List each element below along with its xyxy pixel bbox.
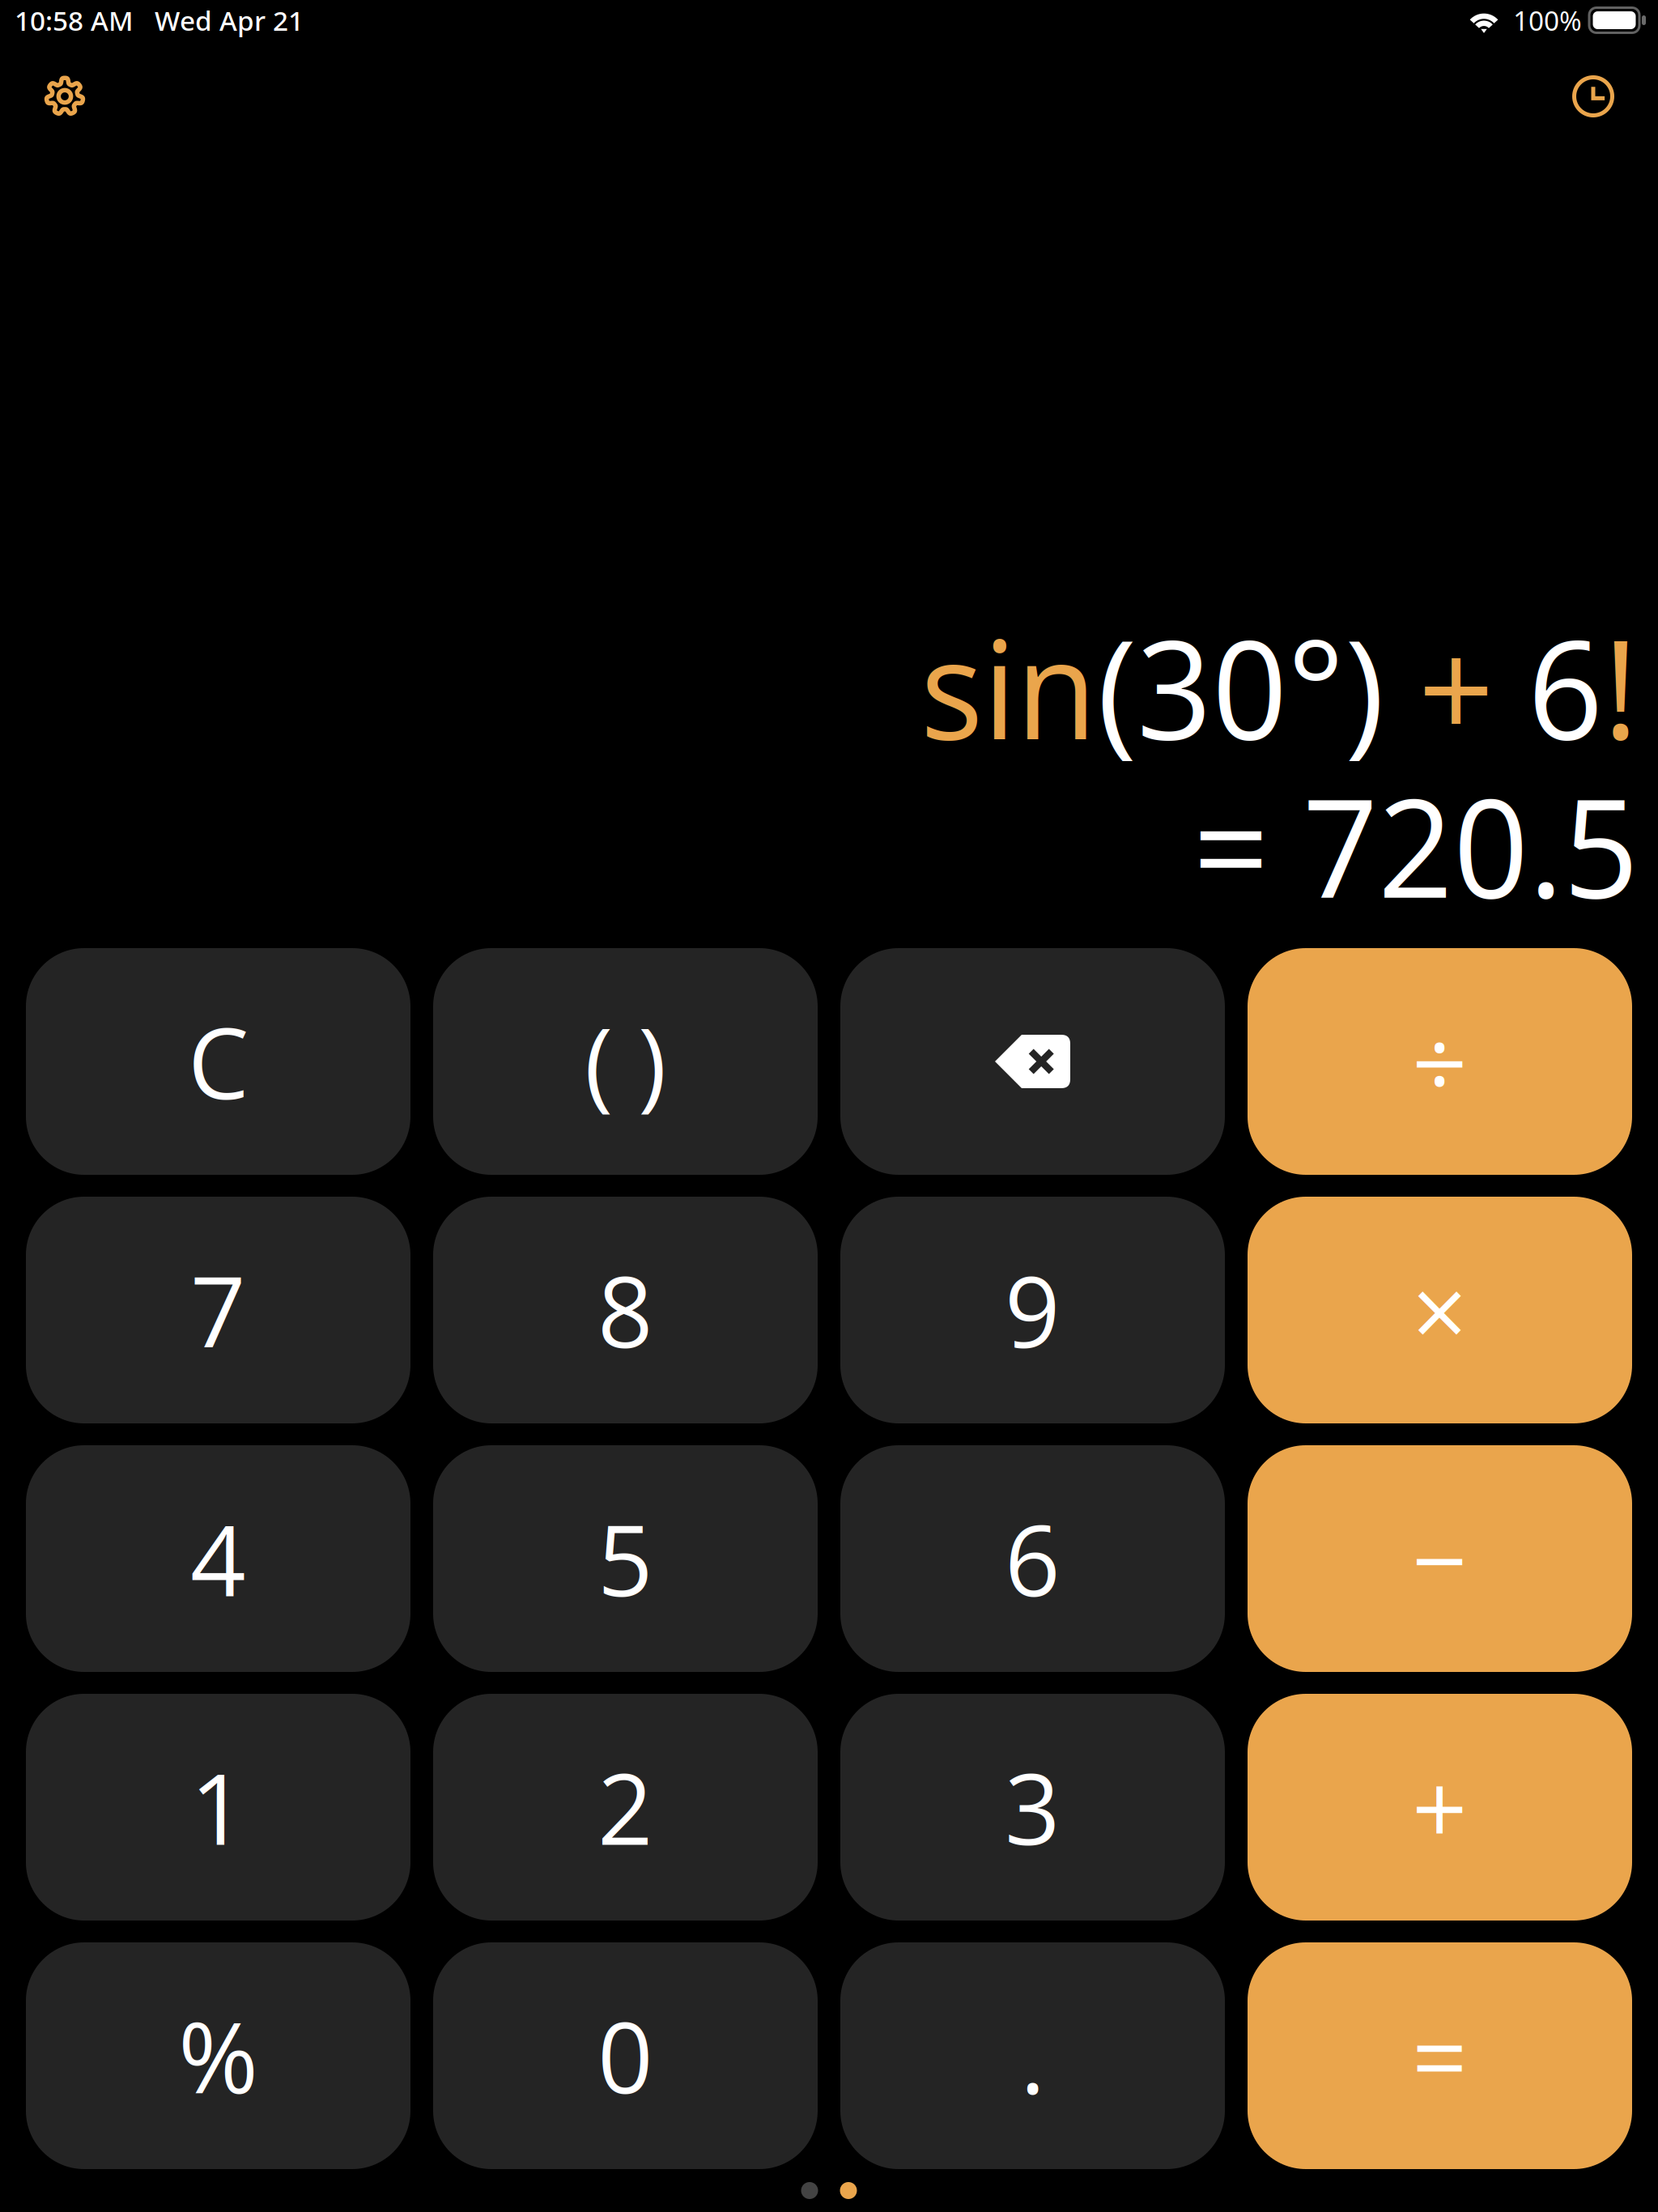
staticText: 8	[597, 1244, 653, 1376]
button[interactable]: =	[1248, 1942, 1632, 2169]
staticText: ( )	[585, 995, 666, 1128]
button[interactable]: History	[1553, 56, 1634, 137]
staticText: +	[1412, 1741, 1468, 1873]
staticText: +	[1384, 594, 1528, 779]
staticText: 9	[1005, 1244, 1061, 1376]
button[interactable]: 2	[433, 1694, 818, 1921]
staticText: −	[1412, 1492, 1468, 1625]
staticText: Wed Apr 21	[155, 2, 304, 38]
button[interactable]: .	[840, 1942, 1225, 2169]
button[interactable]: 9	[840, 1197, 1225, 1423]
button[interactable]: C	[26, 948, 410, 1175]
button[interactable]: 0	[433, 1942, 818, 2169]
button[interactable]: Page 2	[840, 2182, 857, 2199]
button[interactable]: 1	[26, 1694, 410, 1921]
button[interactable]: 7	[26, 1197, 410, 1423]
button[interactable]: Settings	[24, 56, 105, 137]
staticText: sin	[920, 594, 1097, 779]
staticText: 10:58 AM	[15, 2, 134, 38]
staticText: 7	[190, 1244, 246, 1376]
staticText: 5	[597, 1492, 653, 1625]
button[interactable]: Delete	[840, 948, 1225, 1175]
button[interactable]: +	[1248, 1694, 1632, 1921]
staticText: C	[188, 995, 249, 1128]
staticText: 0	[597, 1990, 653, 2122]
button[interactable]: 4	[26, 1445, 410, 1672]
button[interactable]: 8	[433, 1197, 818, 1423]
staticText: (30°)	[1097, 594, 1384, 779]
staticText: 6	[1005, 1492, 1061, 1625]
staticText: 4	[190, 1492, 246, 1625]
button[interactable]: Page 1	[801, 2182, 818, 2199]
button[interactable]: %	[26, 1942, 410, 2169]
staticText: ×	[1412, 1244, 1468, 1376]
button[interactable]: −	[1248, 1445, 1632, 1672]
button[interactable]: ( )	[433, 948, 818, 1175]
staticText: =	[1412, 1990, 1468, 2122]
staticText: %	[178, 1990, 258, 2122]
staticText: 100%	[1513, 2, 1582, 38]
staticText: 1	[190, 1741, 246, 1873]
staticText: ÷	[1412, 995, 1468, 1128]
staticText: 2	[597, 1741, 653, 1873]
button[interactable]: ÷	[1248, 948, 1632, 1175]
staticText: = 720.5	[1193, 752, 1639, 938]
staticText: 6	[1528, 594, 1603, 779]
button[interactable]: 3	[840, 1694, 1225, 1921]
staticText: 3	[1005, 1741, 1061, 1873]
button[interactable]: 5	[433, 1445, 818, 1672]
button[interactable]: ×	[1248, 1197, 1632, 1423]
staticText: .	[1020, 1990, 1045, 2122]
button[interactable]: 6	[840, 1445, 1225, 1672]
staticText: !	[1603, 594, 1639, 779]
